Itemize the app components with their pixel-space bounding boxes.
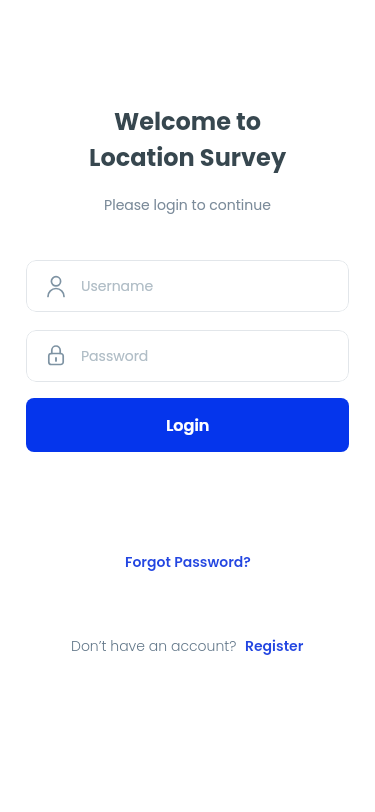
staticText: Please login to continue <box>0 195 375 215</box>
staticText: Welcome to Location Survey <box>0 105 375 175</box>
staticText: Username <box>81 276 154 296</box>
button[interactable]: Register <box>245 636 304 656</box>
staticText: Don’t have an account? <box>71 636 237 656</box>
staticText: Login <box>166 414 210 436</box>
button[interactable]: Password <box>26 330 349 382</box>
staticText: Password <box>81 346 149 366</box>
button[interactable]: Login <box>26 398 349 452</box>
button[interactable]: Forgot Password? <box>125 552 251 572</box>
button[interactable]: Username <box>26 260 349 312</box>
